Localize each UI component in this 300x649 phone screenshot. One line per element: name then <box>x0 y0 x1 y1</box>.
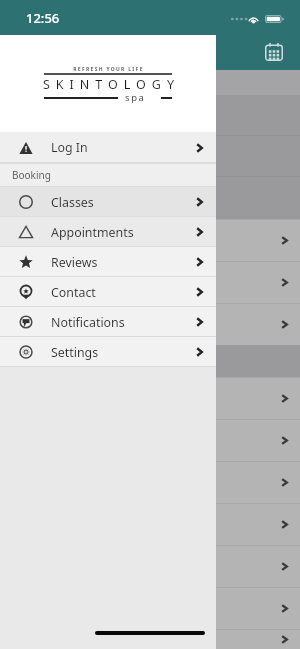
staticText: Notifications <box>51 314 125 331</box>
staticText: Contact <box>51 284 96 301</box>
button[interactable] <box>0 377 300 419</box>
button[interactable]: Log In <box>0 132 216 163</box>
button[interactable]: Appointments <box>0 217 216 247</box>
button[interactable] <box>0 261 300 303</box>
button[interactable] <box>0 629 300 649</box>
button[interactable] <box>0 419 300 461</box>
button[interactable]: Settings <box>0 337 216 367</box>
button[interactable] <box>0 461 300 503</box>
staticText: Reviews <box>51 254 98 271</box>
button[interactable] <box>0 503 300 545</box>
staticText: 12:56 <box>26 9 60 27</box>
staticText: Log In <box>51 139 88 156</box>
staticText: Appointments <box>51 224 134 241</box>
button[interactable]: Contact <box>0 277 216 307</box>
button[interactable] <box>0 545 300 587</box>
staticText: REFRESH YOUR LIFE <box>73 66 144 73</box>
button[interactable]: Reviews <box>0 247 216 277</box>
staticText: spa <box>125 91 146 104</box>
staticText: Booking <box>12 168 51 182</box>
button[interactable] <box>0 587 300 629</box>
button[interactable]: Notifications <box>0 307 216 337</box>
button[interactable]: Calendar <box>259 37 289 67</box>
button[interactable] <box>0 219 300 261</box>
button[interactable] <box>0 303 300 345</box>
staticText: Classes <box>51 194 94 211</box>
staticText: SKINTOLOGY <box>43 76 243 93</box>
staticText: Settings <box>51 344 99 361</box>
button[interactable]: Classes <box>0 187 216 217</box>
